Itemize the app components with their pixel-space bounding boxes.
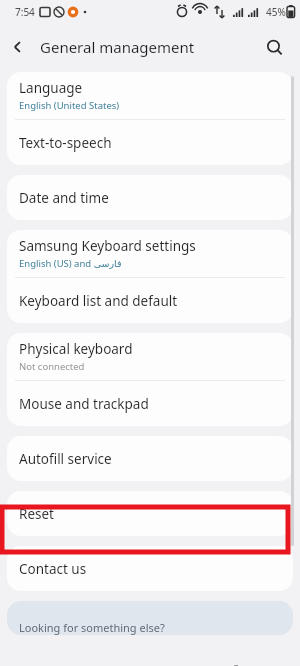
staticText: Physical keyboard	[19, 340, 133, 358]
button[interactable]: Date and time	[7, 175, 293, 220]
staticText: Language	[19, 79, 83, 97]
button[interactable]: Search	[256, 29, 292, 65]
staticText: 45%	[266, 5, 286, 19]
staticText: Autofill service	[19, 450, 112, 468]
staticText: Looking for something else?	[19, 620, 165, 635]
button[interactable]: Keyboard list and default	[7, 278, 293, 323]
button[interactable]: Language	[7, 72, 293, 119]
staticText: Not connected	[19, 360, 85, 373]
staticText: Date and time	[19, 189, 109, 207]
button[interactable]: Physical keyboard	[7, 333, 293, 380]
button[interactable]: Reset	[7, 491, 293, 536]
button[interactable]: Mouse and trackpad	[7, 381, 293, 426]
staticText: Keyboard list and default	[19, 292, 178, 310]
staticText: 7:54	[15, 5, 35, 19]
button[interactable]: Contact us	[7, 546, 293, 591]
button[interactable]: Samsung Keyboard settings	[7, 230, 293, 277]
staticText: General management	[40, 37, 195, 57]
button[interactable]: Text-to-speech	[7, 120, 293, 165]
staticText: Mouse and trackpad	[19, 395, 149, 413]
staticText: Contact us	[19, 560, 87, 578]
button[interactable]: Looking for something else?	[7, 601, 293, 635]
button[interactable]: Back	[0, 29, 36, 65]
staticText: English (United States)	[19, 99, 120, 112]
staticText: Text-to-speech	[19, 134, 112, 152]
staticText: Samsung Keyboard settings	[19, 237, 196, 255]
staticText: English (US) and فارسی	[19, 257, 122, 270]
staticText: Reset	[19, 505, 54, 523]
button[interactable]: Autofill service	[7, 436, 293, 481]
